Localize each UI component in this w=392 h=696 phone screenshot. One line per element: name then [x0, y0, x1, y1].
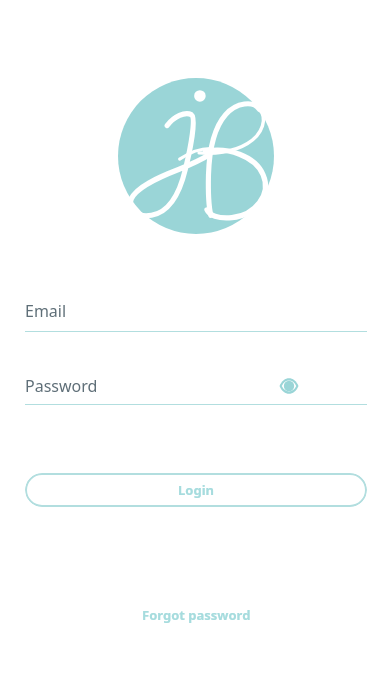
button[interactable]: Password — [25, 375, 275, 397]
button[interactable]: Email — [25, 300, 367, 332]
button[interactable]: Login — [25, 473, 367, 507]
staticText: Login — [178, 481, 214, 499]
button[interactable]: Forgot password — [130, 600, 263, 630]
staticText: Email — [25, 300, 67, 322]
staticText: Forgot password — [142, 606, 251, 624]
button[interactable]: Show password — [276, 373, 302, 399]
staticText: Password — [25, 375, 98, 397]
